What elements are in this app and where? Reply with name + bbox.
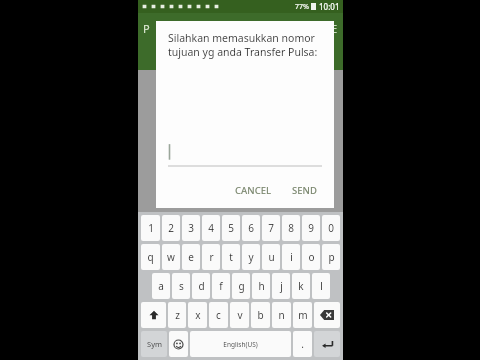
button[interactable]: 0 [322, 215, 340, 241]
staticText: g [238, 279, 245, 293]
staticText: 77% [295, 2, 309, 12]
button[interactable]: a [152, 273, 170, 299]
button[interactable]: Emoji [169, 331, 188, 357]
button[interactable]: 4 [202, 215, 220, 241]
button[interactable]: y [242, 244, 260, 270]
staticText: E [331, 21, 338, 36]
staticText: n [278, 308, 285, 322]
button[interactable]: r [202, 244, 220, 270]
staticText: English(US) [223, 340, 258, 349]
button[interactable]: SEND [285, 179, 324, 202]
staticText: v [237, 308, 243, 322]
button[interactable]: d [192, 273, 210, 299]
button[interactable]: p [322, 244, 340, 270]
button[interactable]: English(US) [190, 331, 291, 357]
staticText: 9 [308, 221, 314, 235]
staticText: j [280, 279, 283, 293]
button[interactable]: o [302, 244, 320, 270]
staticText: P [143, 21, 150, 36]
button[interactable]: 3 [182, 215, 200, 241]
button[interactable]: 8 [282, 215, 300, 241]
button[interactable]: 9 [302, 215, 320, 241]
button[interactable]: k [292, 273, 310, 299]
staticText: 6 [248, 221, 254, 235]
button[interactable]: s [172, 273, 190, 299]
staticText: d [198, 279, 205, 293]
button[interactable] [168, 141, 322, 167]
button[interactable]: j [272, 273, 290, 299]
staticText: Sym [147, 339, 162, 349]
button[interactable]: c [209, 302, 228, 328]
button[interactable]: 5 [222, 215, 240, 241]
staticText: 5 [228, 221, 234, 235]
staticText: SEND [292, 184, 317, 197]
button[interactable]: i [282, 244, 300, 270]
button[interactable]: 7 [262, 215, 280, 241]
button[interactable]: g [232, 273, 250, 299]
staticText: 3 [188, 221, 194, 235]
staticText: y [248, 250, 254, 264]
staticText: 8 [288, 221, 294, 235]
staticText: k [298, 279, 304, 293]
staticText: CANCEL [235, 184, 272, 197]
staticText: e [188, 250, 194, 264]
staticText: r [209, 250, 214, 264]
staticText: 7 [268, 221, 274, 235]
button[interactable]: 2 [162, 215, 180, 241]
button[interactable]: z [168, 302, 186, 328]
staticText: 0 [328, 221, 334, 235]
staticText: s [179, 279, 184, 293]
button[interactable]: t [222, 244, 240, 270]
button[interactable]: n [272, 302, 291, 328]
staticText: l [320, 279, 323, 293]
button[interactable]: f [212, 273, 230, 299]
button[interactable]: 1 [141, 215, 160, 241]
button[interactable]: Backspace [314, 302, 340, 328]
staticText: i [290, 250, 293, 264]
button[interactable]: . [293, 331, 312, 357]
button[interactable]: e [182, 244, 200, 270]
button[interactable]: w [162, 244, 180, 270]
button[interactable]: Sym [141, 331, 167, 357]
staticText: f [219, 279, 223, 293]
staticText: 2 [168, 221, 174, 235]
staticText: x [195, 308, 201, 322]
button[interactable]: b [251, 302, 270, 328]
staticText: 4 [208, 221, 214, 235]
button[interactable]: 6 [242, 215, 260, 241]
staticText: h [258, 279, 265, 293]
staticText: c [216, 308, 221, 322]
button[interactable]: v [230, 302, 249, 328]
button[interactable]: m [293, 302, 312, 328]
button[interactable]: h [252, 273, 270, 299]
button[interactable]: Enter [314, 331, 340, 357]
button[interactable]: q [141, 244, 160, 270]
staticText: t [229, 250, 233, 264]
staticText: z [175, 308, 180, 322]
staticText: u [268, 250, 275, 264]
staticText: 10:01 [319, 1, 340, 12]
staticText: Silahkan memasukkan nomor tujuan yg anda… [168, 31, 318, 59]
staticText: q [147, 250, 154, 264]
staticText: . [301, 337, 304, 351]
button[interactable]: CANCEL [228, 179, 279, 202]
button[interactable]: x [188, 302, 207, 328]
staticText: m [298, 308, 308, 322]
button[interactable]: l [312, 273, 330, 299]
staticText: a [158, 279, 164, 293]
button[interactable]: Shift [141, 302, 166, 328]
button[interactable]: u [262, 244, 280, 270]
staticText: 1 [148, 221, 154, 235]
staticText: p [328, 250, 335, 264]
staticText: w [167, 250, 175, 264]
staticText: b [257, 308, 264, 322]
staticText: o [308, 250, 315, 264]
